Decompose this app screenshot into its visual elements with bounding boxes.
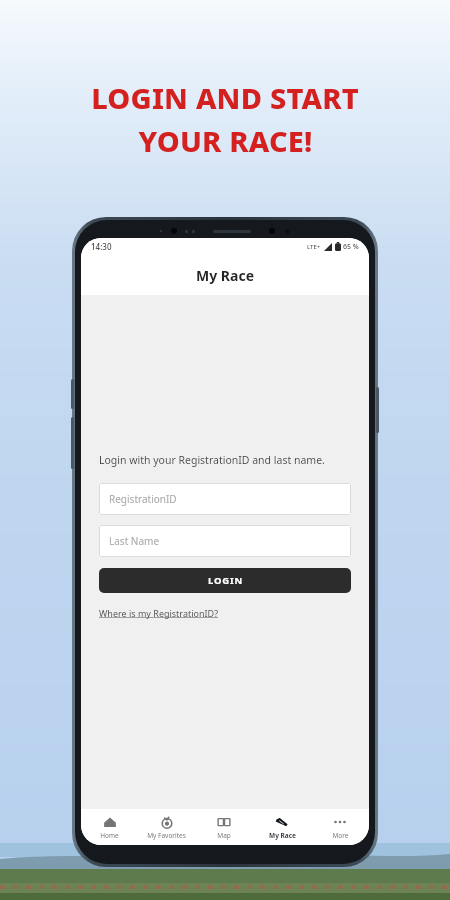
staticText: My Race [196, 266, 254, 285]
button[interactable]: RegistrationID [99, 483, 351, 515]
staticText: YOUR RACE! [138, 121, 313, 160]
button[interactable]: More [311, 809, 369, 845]
staticText: RegistrationID [109, 492, 177, 506]
button[interactable]: Where is my RegistrationID? [99, 607, 219, 619]
staticText: Map [217, 831, 231, 840]
staticText: 65 % [343, 242, 359, 252]
button[interactable]: Map [195, 809, 253, 845]
staticText: 14:30 [91, 241, 112, 252]
button[interactable]: My Favorites [138, 809, 195, 845]
staticText: LOGIN AND START [91, 78, 359, 117]
staticText: Last Name [109, 534, 160, 548]
button[interactable]: My Race [253, 809, 311, 845]
button[interactable]: Last Name [99, 525, 351, 557]
staticText: Home [100, 831, 119, 840]
staticText: Login with your RegistrationID and last … [99, 453, 325, 467]
staticText: LOGIN [208, 574, 243, 587]
staticText: LTE+ [307, 243, 321, 251]
staticText: More [332, 831, 349, 840]
staticText: My Favorites [147, 831, 186, 840]
staticText: My Race [269, 831, 296, 840]
button[interactable]: LOGIN [99, 568, 351, 593]
staticText: Where is my RegistrationID? [99, 607, 219, 619]
button[interactable]: Home [81, 809, 138, 845]
